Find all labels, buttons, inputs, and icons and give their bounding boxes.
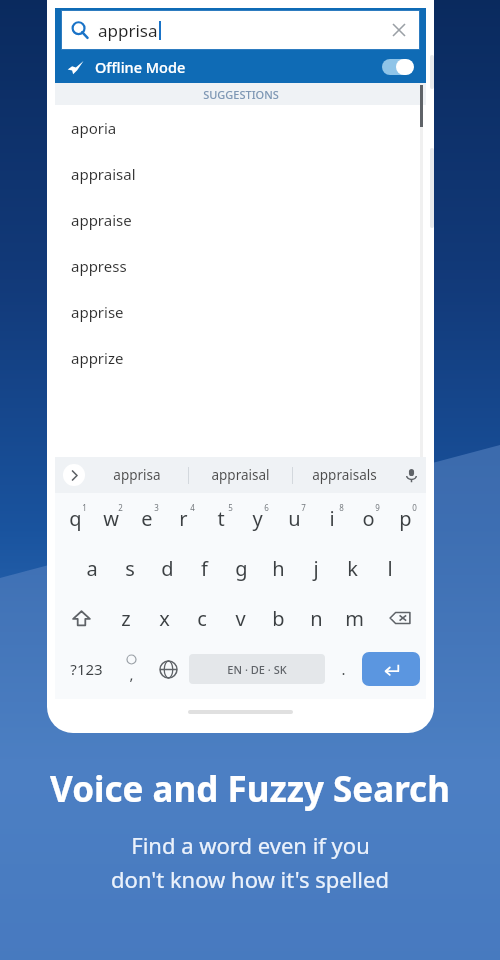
staticText: u bbox=[288, 505, 301, 532]
button[interactable]: , bbox=[113, 643, 150, 695]
staticText: SUGGESTIONS bbox=[203, 87, 279, 102]
button[interactable]: z bbox=[107, 593, 145, 643]
staticText: apprisa bbox=[113, 466, 161, 484]
button[interactable]: apprisa bbox=[85, 457, 188, 493]
staticText: . bbox=[341, 659, 346, 679]
staticText: appress bbox=[71, 256, 127, 276]
button[interactable]: v bbox=[221, 593, 259, 643]
button[interactable]: t bbox=[202, 493, 239, 543]
button[interactable]: h bbox=[260, 543, 297, 593]
button[interactable]: f bbox=[186, 543, 223, 593]
button[interactable]: e bbox=[129, 493, 165, 543]
button[interactable]: l bbox=[371, 543, 408, 593]
staticText: don't know how it's spelled bbox=[111, 864, 389, 894]
staticText: p bbox=[399, 505, 412, 532]
button[interactable]: Shift bbox=[55, 593, 107, 643]
staticText: h bbox=[272, 555, 285, 582]
staticText: m bbox=[345, 605, 364, 632]
staticText: w bbox=[103, 505, 119, 532]
staticText: 1 bbox=[82, 502, 87, 513]
staticText: Voice and Fuzzy Search bbox=[50, 765, 450, 813]
button[interactable]: p bbox=[387, 493, 424, 543]
button[interactable]: apprisa bbox=[61, 10, 420, 50]
button[interactable]: appraise bbox=[55, 197, 426, 243]
button[interactable]: appraisals bbox=[293, 457, 396, 493]
staticText: apprise bbox=[71, 302, 124, 322]
button[interactable]: Voice input bbox=[396, 457, 426, 493]
button[interactable]: u bbox=[276, 493, 313, 543]
staticText: apprize bbox=[71, 348, 124, 368]
staticText: EN · DE · SK bbox=[227, 662, 287, 677]
staticText: c bbox=[197, 605, 207, 632]
button[interactable]: w bbox=[93, 493, 129, 543]
staticText: 4 bbox=[190, 502, 195, 513]
staticText: 6 bbox=[264, 502, 269, 513]
button[interactable]: g bbox=[223, 543, 260, 593]
button[interactable]: n bbox=[297, 593, 335, 643]
staticText: 8 bbox=[339, 502, 344, 513]
staticText: 0 bbox=[412, 502, 417, 513]
button[interactable]: apprise bbox=[55, 289, 426, 335]
staticText: n bbox=[310, 605, 323, 632]
staticText: t bbox=[217, 505, 225, 532]
button[interactable]: a bbox=[73, 543, 111, 593]
staticText: g bbox=[235, 555, 248, 582]
staticText: x bbox=[159, 605, 170, 632]
staticText: i bbox=[329, 505, 335, 532]
staticText: v bbox=[235, 605, 246, 632]
button[interactable]: Offline Mode bbox=[55, 50, 426, 83]
button[interactable]: Change language bbox=[150, 643, 187, 695]
button[interactable]: d bbox=[149, 543, 186, 593]
staticText: r bbox=[179, 505, 188, 532]
button[interactable]: apprize bbox=[55, 335, 426, 381]
button[interactable]: k bbox=[334, 543, 371, 593]
button[interactable]: y bbox=[239, 493, 276, 543]
staticText: 3 bbox=[154, 502, 159, 513]
staticText: 9 bbox=[375, 502, 380, 513]
button[interactable]: i bbox=[313, 493, 350, 543]
staticText: b bbox=[272, 605, 285, 632]
staticText: Find a word even if you bbox=[131, 830, 370, 860]
staticText: ?123 bbox=[70, 659, 103, 679]
button[interactable]: r bbox=[165, 493, 202, 543]
staticText: 7 bbox=[301, 502, 306, 513]
staticText: aporia bbox=[71, 118, 117, 138]
staticText: f bbox=[201, 555, 208, 582]
button[interactable]: s bbox=[111, 543, 149, 593]
staticText: y bbox=[252, 505, 263, 532]
button[interactable]: appraisal bbox=[189, 457, 292, 493]
button[interactable]: Backspace bbox=[373, 593, 426, 643]
staticText: j bbox=[313, 555, 319, 582]
button[interactable]: aporia bbox=[55, 105, 426, 151]
button[interactable]: More suggestions bbox=[63, 464, 85, 486]
button[interactable]: EN · DE · SK bbox=[189, 654, 325, 684]
staticText: appraise bbox=[71, 210, 132, 230]
button[interactable]: c bbox=[183, 593, 221, 643]
button[interactable]: m bbox=[335, 593, 373, 643]
button[interactable]: . bbox=[327, 643, 360, 695]
staticText: d bbox=[161, 555, 174, 582]
staticText: o bbox=[362, 505, 375, 532]
staticText: z bbox=[121, 605, 131, 632]
staticText: appraisals bbox=[312, 466, 377, 484]
staticText: appraisal bbox=[211, 466, 270, 484]
staticText: , bbox=[129, 664, 134, 684]
staticText: e bbox=[141, 505, 153, 532]
staticText: 2 bbox=[118, 502, 123, 513]
staticText: Offline Mode bbox=[95, 57, 186, 77]
button[interactable]: b bbox=[259, 593, 297, 643]
button[interactable]: Enter bbox=[362, 652, 420, 686]
button[interactable]: j bbox=[297, 543, 334, 593]
staticText: l bbox=[387, 555, 393, 582]
staticText: a bbox=[86, 555, 98, 582]
button[interactable]: x bbox=[145, 593, 183, 643]
button[interactable]: Clear search bbox=[388, 19, 410, 41]
button[interactable]: q bbox=[57, 493, 93, 543]
staticText: k bbox=[347, 555, 358, 582]
button[interactable]: ?123 bbox=[59, 643, 113, 695]
button[interactable]: appraisal bbox=[55, 151, 426, 197]
button[interactable]: o bbox=[350, 493, 387, 543]
staticText: 5 bbox=[228, 502, 233, 513]
staticText: s bbox=[125, 555, 135, 582]
button[interactable]: appress bbox=[55, 243, 426, 289]
